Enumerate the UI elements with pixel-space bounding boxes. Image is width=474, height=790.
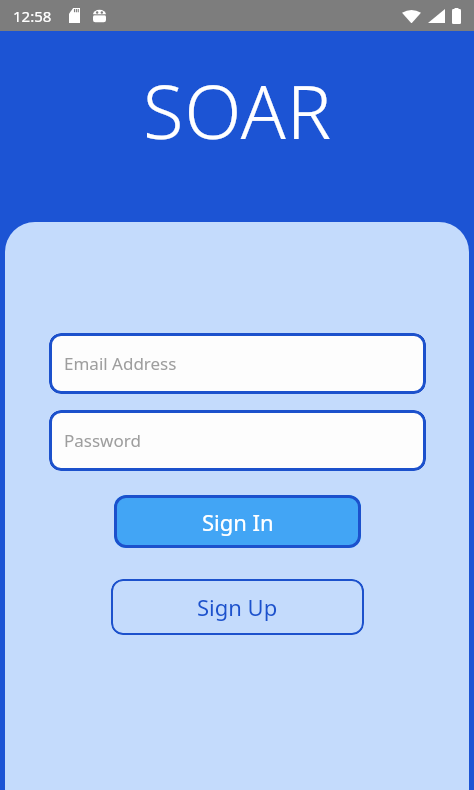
- staticText: Password: [64, 429, 141, 452]
- staticText: Email Address: [64, 352, 177, 375]
- button[interactable]: Email Address: [49, 333, 426, 394]
- staticText: 12:58: [13, 6, 52, 26]
- staticText: Sign In: [202, 507, 274, 537]
- staticText: Sign Up: [197, 592, 278, 622]
- button[interactable]: Sign Up: [111, 579, 364, 635]
- staticText: SOAR: [143, 60, 332, 161]
- button[interactable]: Password: [49, 410, 426, 471]
- button[interactable]: Sign In: [114, 495, 361, 548]
